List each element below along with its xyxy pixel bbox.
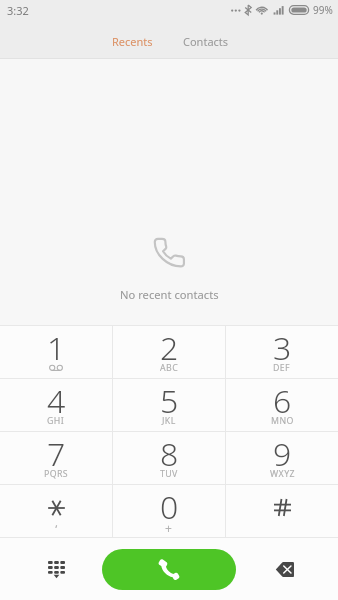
staticText: Recents: [112, 34, 153, 49]
button[interactable]: 0: [113, 485, 225, 537]
button[interactable]: 8: [113, 432, 225, 484]
staticText: WXYZ: [270, 468, 295, 480]
button[interactable]: 5: [113, 379, 225, 431]
button[interactable]: 3: [226, 326, 338, 378]
button[interactable]: Backspace: [270, 555, 298, 583]
button[interactable]: 1: [0, 326, 112, 378]
button[interactable]: 9: [226, 432, 338, 484]
staticText: 8: [160, 432, 179, 476]
staticText: DEF: [273, 362, 291, 374]
button[interactable]: Recents: [93, 20, 167, 59]
button[interactable]: Hide dialpad: [34, 547, 78, 591]
staticText: 6: [273, 379, 292, 423]
button[interactable]: [226, 485, 338, 537]
staticText: 4: [47, 379, 66, 423]
staticText: ,: [55, 515, 58, 530]
staticText: 3: [273, 326, 292, 370]
button[interactable]: Call: [102, 549, 236, 590]
staticText: 3:32: [7, 3, 29, 18]
staticText: 7: [47, 432, 66, 476]
button[interactable]: ,: [0, 485, 112, 537]
button[interactable]: 2: [113, 326, 225, 378]
staticText: 1: [47, 326, 66, 370]
staticText: 9: [273, 432, 292, 476]
staticText: +: [165, 520, 173, 536]
staticText: MNO: [271, 415, 294, 427]
button[interactable]: 6: [226, 379, 338, 431]
staticText: 2: [160, 326, 179, 370]
staticText: 5: [160, 379, 179, 423]
button[interactable]: Contacts: [167, 20, 245, 59]
staticText: PQRS: [44, 468, 69, 480]
staticText: 0: [160, 485, 179, 529]
button[interactable]: 7: [0, 432, 112, 484]
staticText: No recent contacts: [120, 287, 219, 302]
staticText: GHI: [47, 415, 65, 427]
staticText: 99%: [313, 3, 333, 17]
staticText: TUV: [160, 468, 178, 480]
staticText: ABC: [160, 362, 179, 374]
staticText: Contacts: [183, 34, 229, 49]
staticText: JKL: [162, 415, 176, 427]
button[interactable]: 4: [0, 379, 112, 431]
